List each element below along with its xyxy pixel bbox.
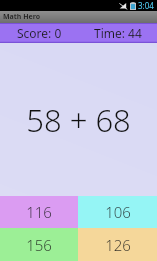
staticText: Math Hero: [3, 12, 41, 22]
staticText: Time: 44: [94, 25, 142, 41]
button[interactable]: 156: [0, 228, 78, 261]
staticText: 156: [26, 235, 52, 255]
staticText: 116: [26, 202, 52, 222]
button[interactable]: 126: [78, 228, 157, 261]
button[interactable]: 116: [0, 196, 78, 228]
staticText: 58 + 68: [26, 99, 131, 141]
button[interactable]: 106: [78, 196, 157, 228]
staticText: 126: [105, 235, 131, 255]
staticText: 3:04: [138, 0, 154, 11]
staticText: 106: [105, 202, 131, 222]
staticText: Score: 0: [17, 25, 62, 41]
